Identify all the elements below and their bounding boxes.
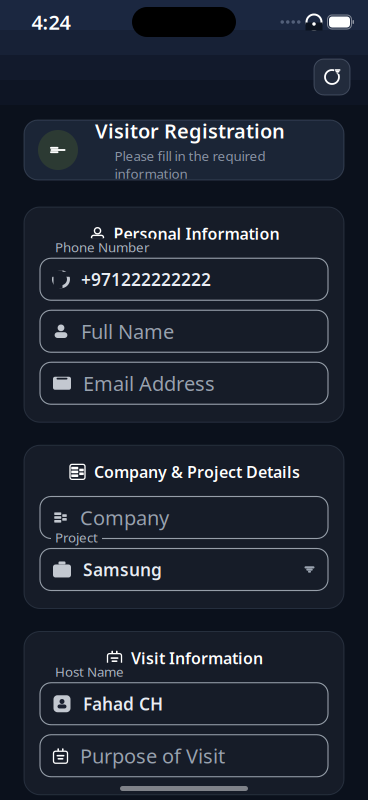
button[interactable]: Company [40,496,328,538]
staticText: Full Name [81,318,174,345]
button[interactable]: Purpose of Visit [40,735,328,777]
staticText: Personal Information [113,223,279,244]
staticText: Visit Information [131,647,263,669]
staticText: 4:24 [31,9,70,35]
staticText: Visitor Registration [95,117,285,144]
staticText: Fahad CH [83,692,163,715]
staticText: Project [55,528,98,546]
staticText: Email Address [83,370,215,397]
staticText: Company & Project Details [94,461,300,482]
button[interactable]: Back [38,130,78,170]
button[interactable]: +971222222222 [40,258,328,300]
staticText: Phone Number [55,238,150,256]
button[interactable]: Samsung [40,548,328,590]
staticText: Please fill in the required information [114,147,265,182]
staticText: Purpose of Visit [80,742,225,769]
button[interactable]: Fahad CH [40,683,328,725]
button[interactable]: Full Name [40,310,328,352]
staticText: Host Name [55,663,124,680]
staticText: Company [80,504,169,531]
button[interactable]: Refresh [314,59,350,95]
button[interactable]: Email Address [40,362,328,404]
staticText: Samsung [83,558,162,581]
staticText: +971222222222 [81,268,211,291]
